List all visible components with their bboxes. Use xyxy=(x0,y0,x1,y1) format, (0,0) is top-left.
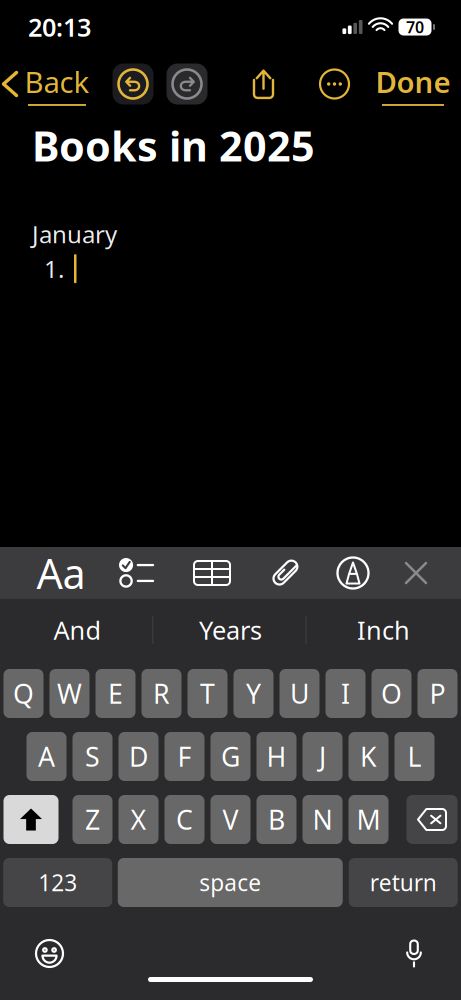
staticText: I xyxy=(341,676,350,711)
button[interactable]: Share xyxy=(240,54,286,114)
button[interactable]: Close xyxy=(398,547,434,599)
button[interactable]: Years xyxy=(154,603,307,657)
button[interactable]: return xyxy=(349,858,458,907)
button[interactable]: Z xyxy=(72,795,112,844)
button[interactable]: Done xyxy=(365,54,460,114)
button[interactable]: F xyxy=(164,732,204,781)
staticText: R xyxy=(153,676,170,711)
button[interactable]: T xyxy=(187,669,227,718)
staticText: F xyxy=(177,739,191,774)
button[interactable]: I xyxy=(325,669,365,718)
button[interactable]: And xyxy=(1,603,154,657)
button[interactable]: Delete xyxy=(406,795,457,844)
button[interactable]: Back xyxy=(0,54,95,114)
staticText: T xyxy=(200,676,215,711)
button[interactable]: Y xyxy=(233,669,273,718)
button[interactable]: O xyxy=(371,669,411,718)
button[interactable]: space xyxy=(118,858,343,907)
button[interactable]: A xyxy=(26,732,66,781)
button[interactable]: W xyxy=(49,669,89,718)
button[interactable]: Redo xyxy=(166,63,207,104)
staticText: H xyxy=(266,739,286,774)
staticText: E xyxy=(108,676,123,711)
button[interactable]: Dictate xyxy=(405,940,423,966)
button[interactable]: B xyxy=(256,795,296,844)
staticText: 123 xyxy=(38,867,77,897)
staticText: V xyxy=(222,802,238,837)
button[interactable]: Emoji xyxy=(36,940,63,967)
button[interactable]: Q xyxy=(3,669,43,718)
button[interactable]: M xyxy=(348,795,388,844)
staticText: L xyxy=(407,739,421,774)
staticText: January xyxy=(32,218,117,250)
button[interactable]: J xyxy=(302,732,342,781)
staticText: U xyxy=(290,676,309,711)
staticText: D xyxy=(129,739,148,774)
button[interactable]: 123 xyxy=(3,858,112,907)
button[interactable]: D xyxy=(118,732,158,781)
button[interactable]: Inch xyxy=(307,603,460,657)
button[interactable]: R xyxy=(141,669,181,718)
staticText: A xyxy=(38,739,55,774)
button[interactable]: X xyxy=(118,795,158,844)
button[interactable]: Shift xyxy=(3,795,58,844)
button[interactable]: S xyxy=(72,732,112,781)
staticText: return xyxy=(370,867,437,897)
staticText: M xyxy=(356,802,380,837)
button[interactable]: Attach xyxy=(262,547,308,599)
staticText: G xyxy=(221,739,240,774)
staticText: Q xyxy=(13,676,34,711)
button[interactable]: K xyxy=(348,732,388,781)
staticText: S xyxy=(85,739,100,774)
staticText: J xyxy=(319,739,326,774)
button[interactable]: V xyxy=(210,795,250,844)
staticText: Y xyxy=(246,676,261,711)
staticText: Z xyxy=(85,802,100,837)
staticText: And xyxy=(53,613,101,647)
button[interactable]: L xyxy=(394,732,434,781)
staticText: space xyxy=(199,867,261,897)
button[interactable]: H xyxy=(256,732,296,781)
button[interactable]: C xyxy=(164,795,204,844)
staticText: 70 xyxy=(406,16,424,38)
button[interactable]: E xyxy=(95,669,135,718)
button[interactable]: Checklist xyxy=(110,547,162,599)
staticText: Done xyxy=(375,62,450,101)
button[interactable]: U xyxy=(279,669,319,718)
staticText: W xyxy=(57,676,82,711)
staticText: X xyxy=(130,802,146,837)
staticText: N xyxy=(312,802,332,837)
staticText: K xyxy=(360,739,377,774)
button[interactable]: Table xyxy=(162,547,262,599)
staticText: Inch xyxy=(357,613,410,647)
button[interactable]: Markup xyxy=(308,547,398,599)
staticText: P xyxy=(429,676,445,711)
staticText: O xyxy=(381,676,402,711)
staticText: Back xyxy=(24,62,89,101)
staticText: B xyxy=(268,802,285,837)
staticText: Years xyxy=(199,613,262,647)
staticText: C xyxy=(176,802,193,837)
staticText: 1. xyxy=(44,253,64,285)
button[interactable]: N xyxy=(302,795,342,844)
button[interactable]: More xyxy=(311,54,357,114)
staticText: 20:13 xyxy=(28,10,91,44)
staticText: Aa xyxy=(36,546,85,600)
button[interactable]: Aa xyxy=(12,547,110,599)
button[interactable]: Undo xyxy=(112,63,153,104)
button[interactable]: P xyxy=(417,669,457,718)
button[interactable]: G xyxy=(210,732,250,781)
staticText: Books in 2025 xyxy=(32,118,315,173)
